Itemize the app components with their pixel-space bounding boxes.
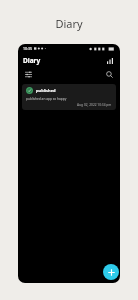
button[interactable]: Add entry — [103, 264, 119, 280]
button[interactable]: Statistics — [104, 55, 115, 66]
staticText: 10:35 — [23, 46, 32, 51]
button[interactable]: Search — [104, 69, 115, 80]
staticText: published — [36, 88, 56, 93]
button[interactable]: Filter — [23, 69, 34, 80]
staticText: published an app so happy — [26, 97, 67, 101]
staticText: Aug 02, 2022 10:34 pm — [77, 103, 112, 107]
staticText: Diary — [55, 16, 83, 31]
staticText: Diary — [23, 56, 41, 65]
button[interactable]: published — [22, 84, 116, 110]
